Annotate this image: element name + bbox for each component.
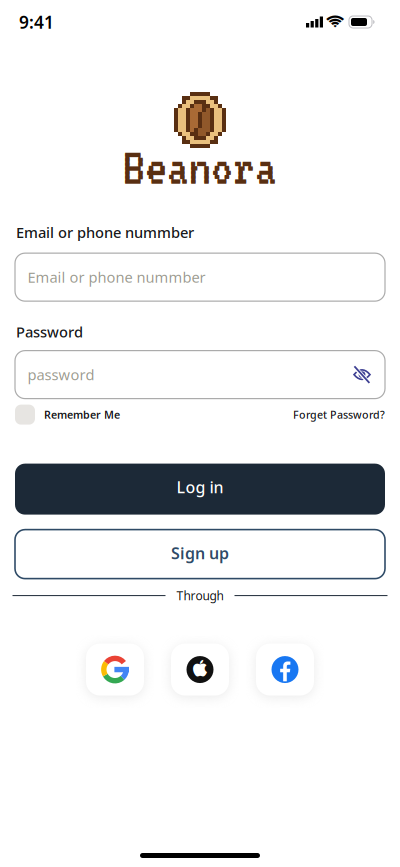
staticText:  xyxy=(279,661,291,683)
staticText: Email or phone nummber xyxy=(27,267,205,287)
staticText: Log in xyxy=(176,476,223,498)
button[interactable]: Continue with Facebook xyxy=(256,644,314,696)
staticText: Email or phone nummber xyxy=(16,223,194,242)
button[interactable]: Log in xyxy=(15,464,385,515)
staticText: 9:41 xyxy=(19,10,54,33)
staticText: Through xyxy=(176,588,223,603)
button[interactable]: Sign up xyxy=(15,530,385,579)
staticText: Sign up xyxy=(171,542,229,564)
textField[interactable]: Email or phone nummber xyxy=(27,267,385,287)
staticText: Password xyxy=(16,322,83,342)
button[interactable]: Continue with Google xyxy=(86,644,144,696)
button[interactable]: Continue with Apple xyxy=(171,644,229,696)
textField[interactable]: password xyxy=(27,365,352,384)
staticText: Forget Password? xyxy=(293,407,385,422)
staticText:  xyxy=(193,660,207,678)
staticText: Beanora xyxy=(123,140,277,195)
staticText: password xyxy=(27,365,94,384)
button[interactable]: Forget Password? xyxy=(293,407,385,422)
button[interactable]: Remember Me xyxy=(15,405,120,425)
staticText: Remember Me xyxy=(44,407,120,422)
staticText:  xyxy=(326,14,344,30)
button[interactable]: Show password xyxy=(352,366,385,383)
